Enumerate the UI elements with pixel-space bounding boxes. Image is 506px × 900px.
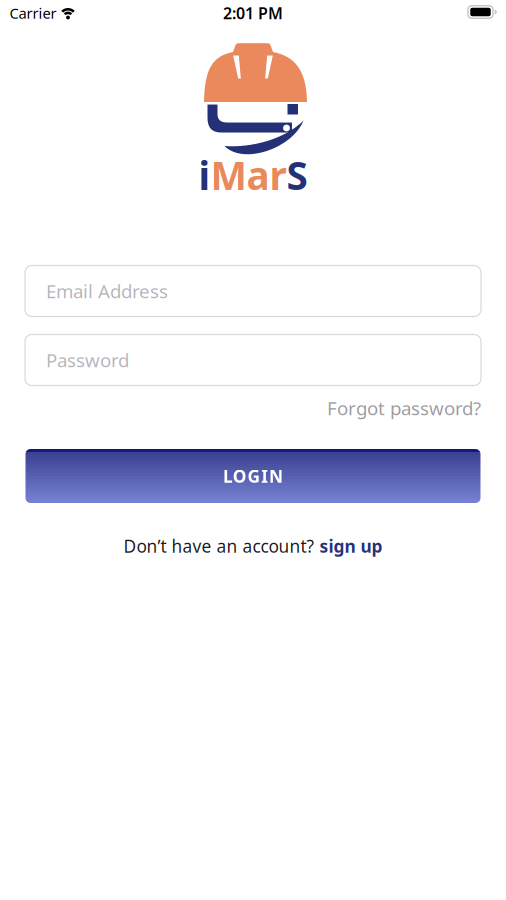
button[interactable]: Password [25,334,481,385]
button[interactable]: LOGIN [25,449,480,503]
staticText: Password [46,348,129,372]
staticText: Don’t have an account? [123,534,314,557]
staticText: sign up [319,534,382,557]
staticText: Email Address [46,279,168,303]
staticText: Carrier [9,3,56,23]
button[interactable]: Forgot password? [327,396,481,420]
staticText: i [198,149,210,201]
staticText: Mar [210,149,286,201]
staticText: LOGIN [223,464,283,487]
button[interactable]: Email Address [25,265,481,316]
staticText: Forgot password? [327,396,481,420]
staticText: S [286,149,307,201]
staticText: 2:01 PM [223,2,283,24]
button[interactable]: sign up [319,534,382,557]
